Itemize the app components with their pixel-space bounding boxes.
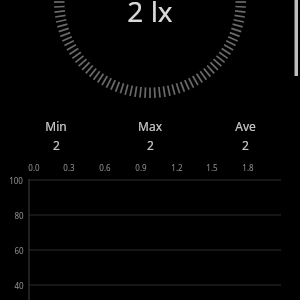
staticText: 2 lx <box>127 0 173 30</box>
staticText: 0.6 <box>99 162 111 173</box>
staticText: 80 <box>14 210 24 221</box>
staticText: Ave <box>235 118 256 134</box>
staticText: 1.2 <box>171 162 183 173</box>
staticText: 40 <box>14 280 24 291</box>
staticText: 1.8 <box>242 162 254 173</box>
staticText: 2 <box>147 137 154 153</box>
staticText: 2 <box>53 137 60 153</box>
staticText: Min <box>45 118 67 134</box>
staticText: 0.9 <box>135 162 147 173</box>
staticText: 60 <box>14 245 24 256</box>
staticText: 1.5 <box>206 162 218 173</box>
staticText: 100 <box>9 175 23 186</box>
staticText: 0.3 <box>63 162 75 173</box>
staticText: 2 <box>242 137 249 153</box>
staticText: Max <box>138 118 162 134</box>
button[interactable]: 2 lx <box>0 0 300 300</box>
other: Scroll indicator <box>292 0 300 76</box>
button[interactable]: Min <box>32 118 80 154</box>
button[interactable]: Ave <box>221 118 269 154</box>
staticText: 0.0 <box>28 162 40 173</box>
button[interactable]: Max <box>126 118 174 154</box>
